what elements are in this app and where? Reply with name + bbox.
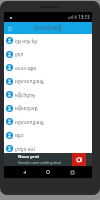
button[interactable]: ផ្សេង xyxy=(4,128,92,142)
staticText: សាលា ឧត្តម xyxy=(15,65,37,71)
staticText: មន្ទីរពេទ្យខេត្ត xyxy=(15,105,38,111)
button[interactable]: ក្រសួង អប់រំ xyxy=(4,142,92,155)
button[interactable]: ពុម្ព អក្សរ ខ្មែរ xyxy=(4,34,92,47)
button[interactable]: Home xyxy=(42,166,54,178)
button[interactable]: Recent apps xyxy=(66,166,78,178)
staticText: Nouv pret xyxy=(18,154,39,160)
staticText: អគ្គនាយកដ្ឋានរដ្ឋ xyxy=(15,119,44,125)
button[interactable]: Back xyxy=(18,166,30,178)
staticText: អគ្គនាយកដ្ឋានរដ្ឋ xyxy=(15,78,44,84)
staticText: ផ្សេង xyxy=(15,132,24,138)
staticText: ស្រុក xyxy=(15,51,24,57)
button[interactable]: អគ្គនាយកដ្ឋានរដ្ឋ xyxy=(4,74,92,88)
staticText: 13:13 xyxy=(78,14,90,20)
staticText: មន្ទីរ វិស្វកម្ម xyxy=(15,92,35,98)
staticText: Simulez votre credit gratuit xyxy=(18,160,62,165)
staticText: ពុម្ព អក្សរ ខ្មែរ xyxy=(15,38,38,44)
button[interactable]: អគ្គនាយកដ្ឋានរដ្ឋ xyxy=(4,115,92,128)
button[interactable]: Nouv pret xyxy=(4,153,92,166)
staticText: ក្រសួង អប់រំ xyxy=(15,146,35,152)
button[interactable]: មន្ទីរ វិស្វកម្ម xyxy=(4,88,92,101)
button[interactable]: Navigate up xyxy=(4,23,15,34)
button[interactable]: សាលា ឧត្តម xyxy=(4,61,92,74)
button[interactable]: ស្រុក xyxy=(4,47,92,61)
button[interactable]: មន្ទីរពេទ្យខេត្ត xyxy=(4,101,92,115)
staticText: ទំនាក់ទំនងថ្មី xyxy=(34,24,62,32)
